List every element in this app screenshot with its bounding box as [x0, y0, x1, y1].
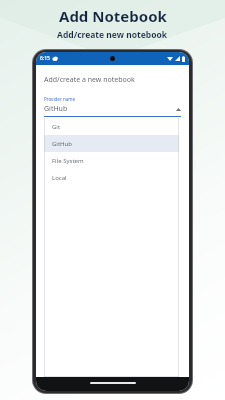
staticText: Provider name: [44, 96, 75, 102]
button[interactable]: File System: [44, 152, 179, 169]
button[interactable]: Git: [44, 118, 179, 135]
button[interactable]: GitHub: [44, 135, 179, 152]
staticText: File System: [52, 157, 84, 165]
button[interactable]: Provider name: [44, 96, 181, 117]
button[interactable]: Local: [44, 169, 179, 186]
staticText: Local: [52, 174, 67, 182]
other: Open provider dropdown: [176, 108, 181, 111]
staticText: GitHub: [44, 104, 68, 114]
staticText: Git: [52, 123, 61, 131]
staticText: 6:15: [40, 55, 50, 62]
staticText: Add Notebook: [59, 6, 167, 26]
staticText: Add/create new notebook: [57, 29, 168, 41]
staticText: Add/create a new notebook: [44, 75, 135, 85]
staticText: GitHub: [52, 140, 72, 148]
